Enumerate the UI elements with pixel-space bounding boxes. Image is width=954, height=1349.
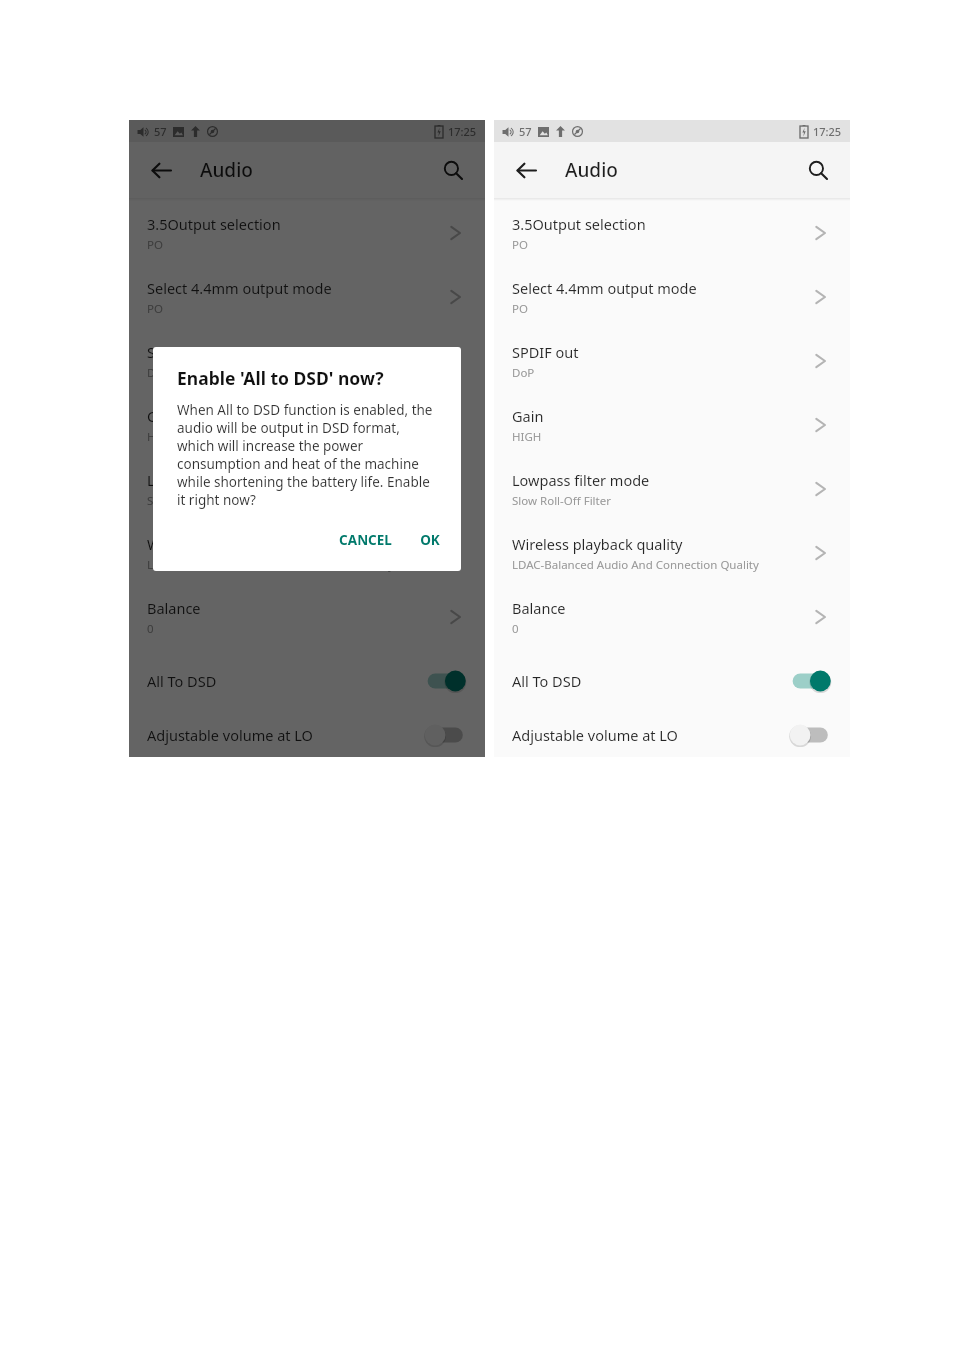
staticText: Audio <box>200 157 253 183</box>
button[interactable]: CANCEL <box>328 523 403 557</box>
button[interactable]: Balance <box>129 585 485 649</box>
staticText: Lowpass filter mode <box>512 470 650 490</box>
staticText: When All to DSD function is enabled, the… <box>177 401 437 509</box>
staticText: Audio <box>565 157 618 183</box>
button[interactable]: Search <box>429 146 477 194</box>
staticText: 0 <box>512 621 519 637</box>
staticText: 17:25 <box>813 124 842 139</box>
staticText: Wireless playback quality <box>512 534 683 554</box>
button[interactable]: Lowpass filter mode <box>129 457 485 521</box>
staticText: LDAC-Balanced Audio And Connection Quali… <box>512 557 759 573</box>
staticText: 57 <box>154 124 167 139</box>
staticText: OK <box>420 531 440 549</box>
staticText: 0 <box>147 621 154 637</box>
button[interactable]: Wireless playback quality <box>494 521 850 585</box>
staticText: Slow Roll-Off Filter <box>512 493 611 509</box>
staticText: HIGH <box>147 429 177 445</box>
button[interactable]: Search <box>794 146 842 194</box>
staticText: Lowpass filter mode <box>147 470 285 490</box>
staticText: All To DSD <box>512 671 582 691</box>
staticText: Gain <box>512 406 544 426</box>
staticText: PO <box>512 301 528 317</box>
staticText: SPDIF out <box>147 342 214 362</box>
staticText: 3.5Output selection <box>147 214 281 234</box>
staticText: PO <box>147 301 163 317</box>
staticText: HIGH <box>512 429 542 445</box>
button[interactable]: 3.5Output selection <box>129 201 485 265</box>
button[interactable]: 3.5Output selection <box>494 201 850 265</box>
button[interactable]: Toggle off <box>790 722 834 748</box>
button[interactable]: SPDIF out <box>129 329 485 393</box>
button[interactable]: Gain <box>494 393 850 457</box>
staticText: SPDIF out <box>512 342 579 362</box>
staticText: 3.5Output selection <box>512 214 646 234</box>
button[interactable]: Lowpass filter mode <box>494 457 850 521</box>
button[interactable]: Back <box>502 146 550 194</box>
staticText: Slow Roll-Off Filter <box>147 493 246 509</box>
staticText: 17:25 <box>448 124 477 139</box>
staticText: LDAC-Balanced Audio And Connection Quali… <box>147 557 394 573</box>
button[interactable]: Gain <box>129 393 485 457</box>
button[interactable]: OK <box>409 523 451 557</box>
staticText: DoP <box>147 365 170 381</box>
button[interactable]: Adjustable volume at LO <box>129 713 485 757</box>
staticText: 57 <box>519 124 532 139</box>
staticText: Select 4.4mm output mode <box>147 278 332 298</box>
staticText: Balance <box>512 598 566 618</box>
staticText: DoP <box>512 365 535 381</box>
staticText: Adjustable volume at LO <box>147 725 313 745</box>
staticText: All To DSD <box>147 671 217 691</box>
button[interactable]: Select 4.4mm output mode <box>129 265 485 329</box>
staticText: Select 4.4mm output mode <box>512 278 697 298</box>
button[interactable]: Adjustable volume at LO <box>494 713 850 757</box>
staticText: Wireless playback quality <box>147 534 318 554</box>
staticText: Adjustable volume at LO <box>512 725 678 745</box>
button[interactable]: All To DSD <box>129 649 485 713</box>
staticText: Enable 'All to DSD' now? <box>177 366 384 390</box>
staticText: CANCEL <box>339 531 392 549</box>
button[interactable]: SPDIF out <box>494 329 850 393</box>
button[interactable]: Toggle on <box>790 668 834 694</box>
button[interactable]: Toggle off <box>425 722 469 748</box>
button[interactable]: Wireless playback quality <box>129 521 485 585</box>
button[interactable]: Back <box>137 146 185 194</box>
staticText: Balance <box>147 598 201 618</box>
button[interactable]: All To DSD <box>494 649 850 713</box>
button[interactable]: Toggle on <box>425 668 469 694</box>
button[interactable]: Balance <box>494 585 850 649</box>
staticText: Gain <box>147 406 179 426</box>
staticText: PO <box>512 237 528 253</box>
button[interactable]: Select 4.4mm output mode <box>494 265 850 329</box>
staticText: PO <box>147 237 163 253</box>
